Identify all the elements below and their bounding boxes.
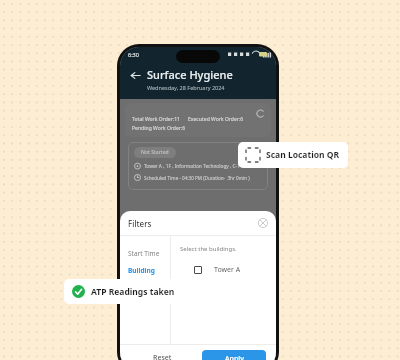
staticText: Surface Hygiene — [147, 67, 233, 82]
button[interactable]: Back — [127, 67, 143, 83]
staticText: Floor — [128, 283, 144, 292]
staticText: Filters — [128, 218, 152, 229]
button[interactable]: Building — [120, 262, 170, 279]
staticText: Apply — [225, 354, 244, 360]
staticText: Building — [128, 266, 155, 275]
button[interactable]: Not Started — [128, 142, 268, 190]
button[interactable]: ATP Readings taken — [64, 279, 183, 304]
button[interactable]: Start Time — [120, 245, 170, 262]
staticText: Scan Location QR — [266, 149, 340, 161]
button[interactable]: Reset — [130, 350, 194, 360]
button[interactable]: Floor — [120, 279, 170, 296]
button[interactable]: Apply — [202, 350, 266, 360]
staticText: ATP Readings taken — [91, 286, 175, 298]
staticText: Tower A — [214, 265, 241, 275]
staticText: Pending Work Order:6 — [132, 125, 186, 132]
staticText: Executed Work Order:6 — [188, 116, 244, 123]
staticText: Not Started — [141, 149, 169, 156]
staticText: Scheduled Time - 04:30 PM (Duration- 3hr… — [144, 175, 250, 181]
button[interactable]: Scan Location QR — [238, 142, 348, 168]
staticText: Start Time — [128, 249, 160, 258]
staticText: Wednesday, 28 February 2024 — [147, 84, 225, 91]
button[interactable]: Tower A — [180, 263, 276, 277]
staticText: 6:30 — [128, 51, 139, 58]
staticText: Select the buildings. — [180, 245, 237, 253]
button[interactable]: Close — [258, 218, 268, 228]
staticText: Reset — [153, 353, 172, 360]
button[interactable]: Refresh — [256, 109, 265, 118]
staticText: Tower A , 1F , Information Technology , … — [144, 163, 240, 170]
staticText: Total Work Order:11 — [132, 116, 180, 123]
